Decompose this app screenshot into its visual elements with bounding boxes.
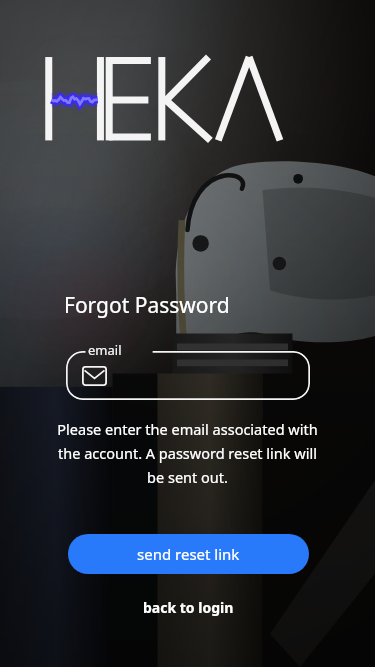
staticText: Please enter the email associated with t… [52,419,323,487]
staticText: back to login [143,598,234,617]
staticText: send reset link [137,544,240,564]
staticText: email [88,341,122,359]
staticText: Forgot Password [64,291,230,320]
button[interactable]: email input [66,351,310,400]
button[interactable]: back to login [128,595,248,619]
button[interactable]: send reset link [68,534,309,574]
